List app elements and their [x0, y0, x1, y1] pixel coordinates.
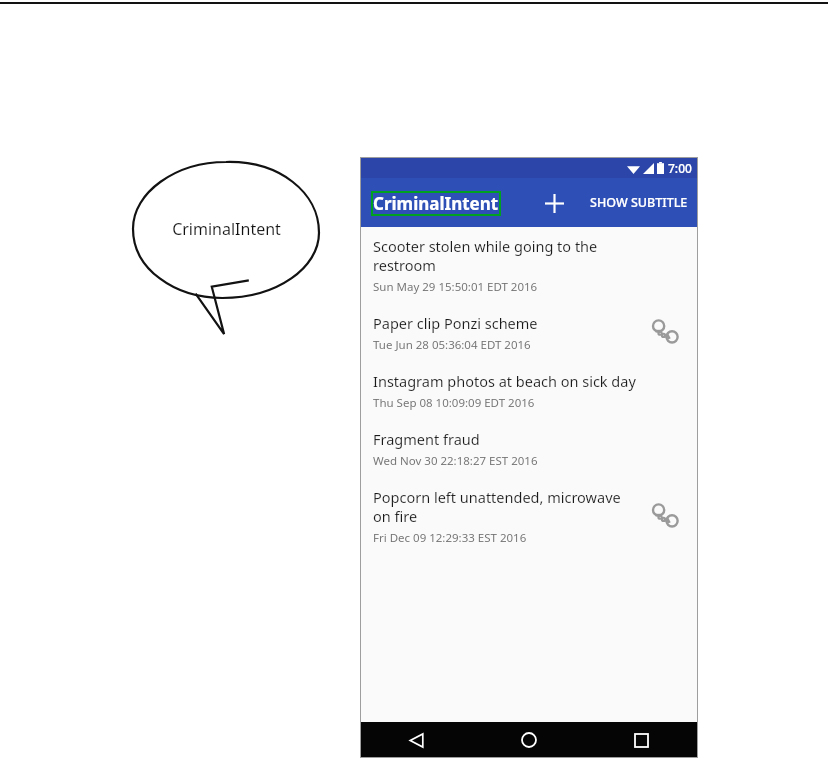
button[interactable]: CriminalIntent [373, 192, 499, 215]
button[interactable]: Scooter stolen while going to the restro… [360, 227, 698, 304]
button[interactable]: Recents [585, 722, 698, 758]
staticText: Paper clip Ponzi scheme [373, 313, 538, 333]
staticText: Thu Sep 08 10:09:09 EDT 2016 [373, 395, 535, 411]
staticText: 7:00 [668, 160, 692, 176]
staticText: CriminalIntent [373, 192, 499, 215]
staticText: CriminalIntent [172, 218, 281, 240]
staticText: Wed Nov 30 22:18:27 EST 2016 [373, 453, 538, 469]
other: Solved [649, 317, 681, 349]
other: Solved [649, 501, 681, 533]
button[interactable]: Fragment fraud [360, 420, 698, 478]
staticText: Scooter stolen while going to the restro… [373, 236, 642, 275]
button[interactable]: SHOW SUBTITLE [586, 188, 692, 217]
button[interactable]: Paper clip Ponzi scheme [360, 304, 698, 362]
button[interactable]: New crime [534, 183, 574, 223]
button[interactable]: Instagram photos at beach on sick day [360, 362, 698, 420]
staticText: Fragment fraud [373, 429, 480, 449]
staticText: Sun May 29 15:50:01 EDT 2016 [373, 279, 538, 295]
staticText: Fri Dec 09 12:29:33 EST 2016 [373, 530, 527, 546]
button[interactable]: Home [472, 722, 585, 758]
staticText: Popcorn left unattended, microwave on fi… [373, 487, 642, 526]
button[interactable]: Popcorn left unattended, microwave on fi… [360, 478, 698, 555]
button[interactable]: Back [360, 722, 472, 758]
staticText: SHOW SUBTITLE [590, 194, 688, 211]
staticText: Tue Jun 28 05:36:04 EDT 2016 [373, 337, 531, 353]
staticText: Instagram photos at beach on sick day [373, 371, 636, 391]
